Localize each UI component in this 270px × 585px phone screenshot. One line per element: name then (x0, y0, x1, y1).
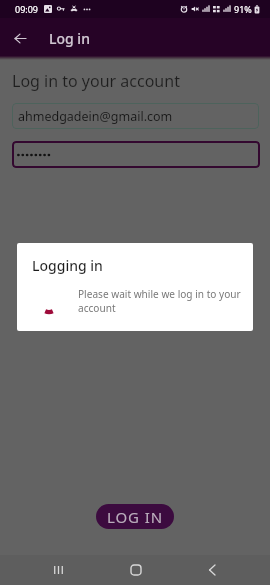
staticText: Log in (49, 29, 90, 48)
staticText: Log in to your account (12, 70, 180, 92)
staticText: 91% (234, 3, 252, 15)
button[interactable]: Home (115, 555, 156, 585)
button[interactable]: Recents (38, 555, 79, 585)
button[interactable]: ahmedgadein@gmail.com (12, 103, 259, 129)
staticText: ahmedgadein@gmail.com (18, 108, 173, 125)
staticText: Please wait while we log in to your acco… (78, 287, 245, 315)
button[interactable]: LOG IN (96, 504, 174, 529)
button[interactable]: Back (6, 24, 34, 52)
staticText: LOG IN (107, 507, 163, 527)
button[interactable]: Back (191, 555, 232, 585)
button[interactable] (12, 141, 260, 168)
staticText: 09:09 (15, 3, 39, 15)
staticText: Logging in (32, 256, 103, 275)
